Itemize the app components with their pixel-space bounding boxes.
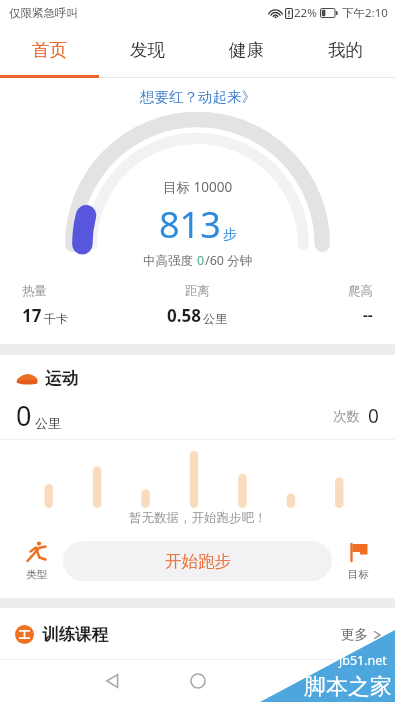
staticText: 类型 [26, 568, 47, 581]
staticText: 更多 [341, 626, 368, 643]
staticText: 公里 [35, 415, 61, 431]
staticText: 运动 [45, 368, 78, 389]
staticText: 距离 [185, 283, 210, 299]
staticText: 813 [159, 200, 221, 249]
staticText: 爬高 [348, 283, 373, 299]
staticText: 0.58 [167, 304, 201, 327]
staticText: /60 分钟 [205, 252, 253, 269]
button[interactable]: 爬高 [263, 283, 395, 324]
button[interactable]: Home [178, 661, 218, 701]
staticText: 17 [22, 304, 42, 327]
button[interactable]: 我的 [296, 25, 395, 78]
staticText: 目标 [348, 568, 369, 581]
staticText: 首页 [32, 39, 67, 61]
staticText: 发现 [130, 39, 165, 61]
staticText: 千卡 [44, 311, 68, 326]
button[interactable]: 健康 [197, 25, 296, 78]
staticText: 想要红？动起来》 [140, 88, 256, 106]
staticText: 步 [223, 226, 237, 244]
button[interactable]: 想要红？动起来》 [140, 88, 256, 106]
staticText: 热量 [22, 283, 47, 299]
button[interactable]: 目标 [342, 536, 375, 585]
staticText: -- [363, 304, 373, 324]
button[interactable]: 距离 [131, 283, 263, 327]
staticText: 训练课程 [42, 624, 108, 645]
staticText: 开始跑步 [165, 551, 231, 572]
staticText: 目标 10000 [163, 178, 233, 196]
other: 类型 [24, 540, 49, 565]
staticText: jb51.net [339, 652, 387, 669]
other: 运动 [16, 372, 38, 386]
button[interactable]: 类型 [20, 536, 53, 585]
staticText: 22% [294, 5, 317, 21]
other: 目标 [346, 540, 371, 565]
button[interactable]: Back [92, 661, 132, 701]
staticText: 公里 [203, 311, 227, 326]
button[interactable]: 训练课程 [0, 608, 395, 660]
staticText: 0 [197, 252, 205, 269]
button[interactable]: 开始跑步 [63, 541, 332, 581]
button[interactable]: 运动 [16, 368, 78, 389]
button[interactable]: 首页 [0, 25, 98, 78]
staticText: 次数 [333, 408, 360, 425]
staticText: 健康 [229, 39, 264, 61]
staticText: 仅限紧急呼叫 [9, 6, 78, 20]
button[interactable]: 热量 [0, 283, 131, 327]
staticText: 脚本之家 [304, 673, 392, 701]
staticText: 下午2:10 [342, 5, 388, 21]
staticText: 暂无数据，开始跑步吧！ [129, 510, 267, 526]
button[interactable]: 发现 [98, 25, 197, 78]
staticText: 0 [368, 403, 379, 429]
staticText: 我的 [328, 39, 363, 61]
staticText: 0 [16, 397, 32, 434]
staticText: 中高强度 [143, 252, 197, 269]
